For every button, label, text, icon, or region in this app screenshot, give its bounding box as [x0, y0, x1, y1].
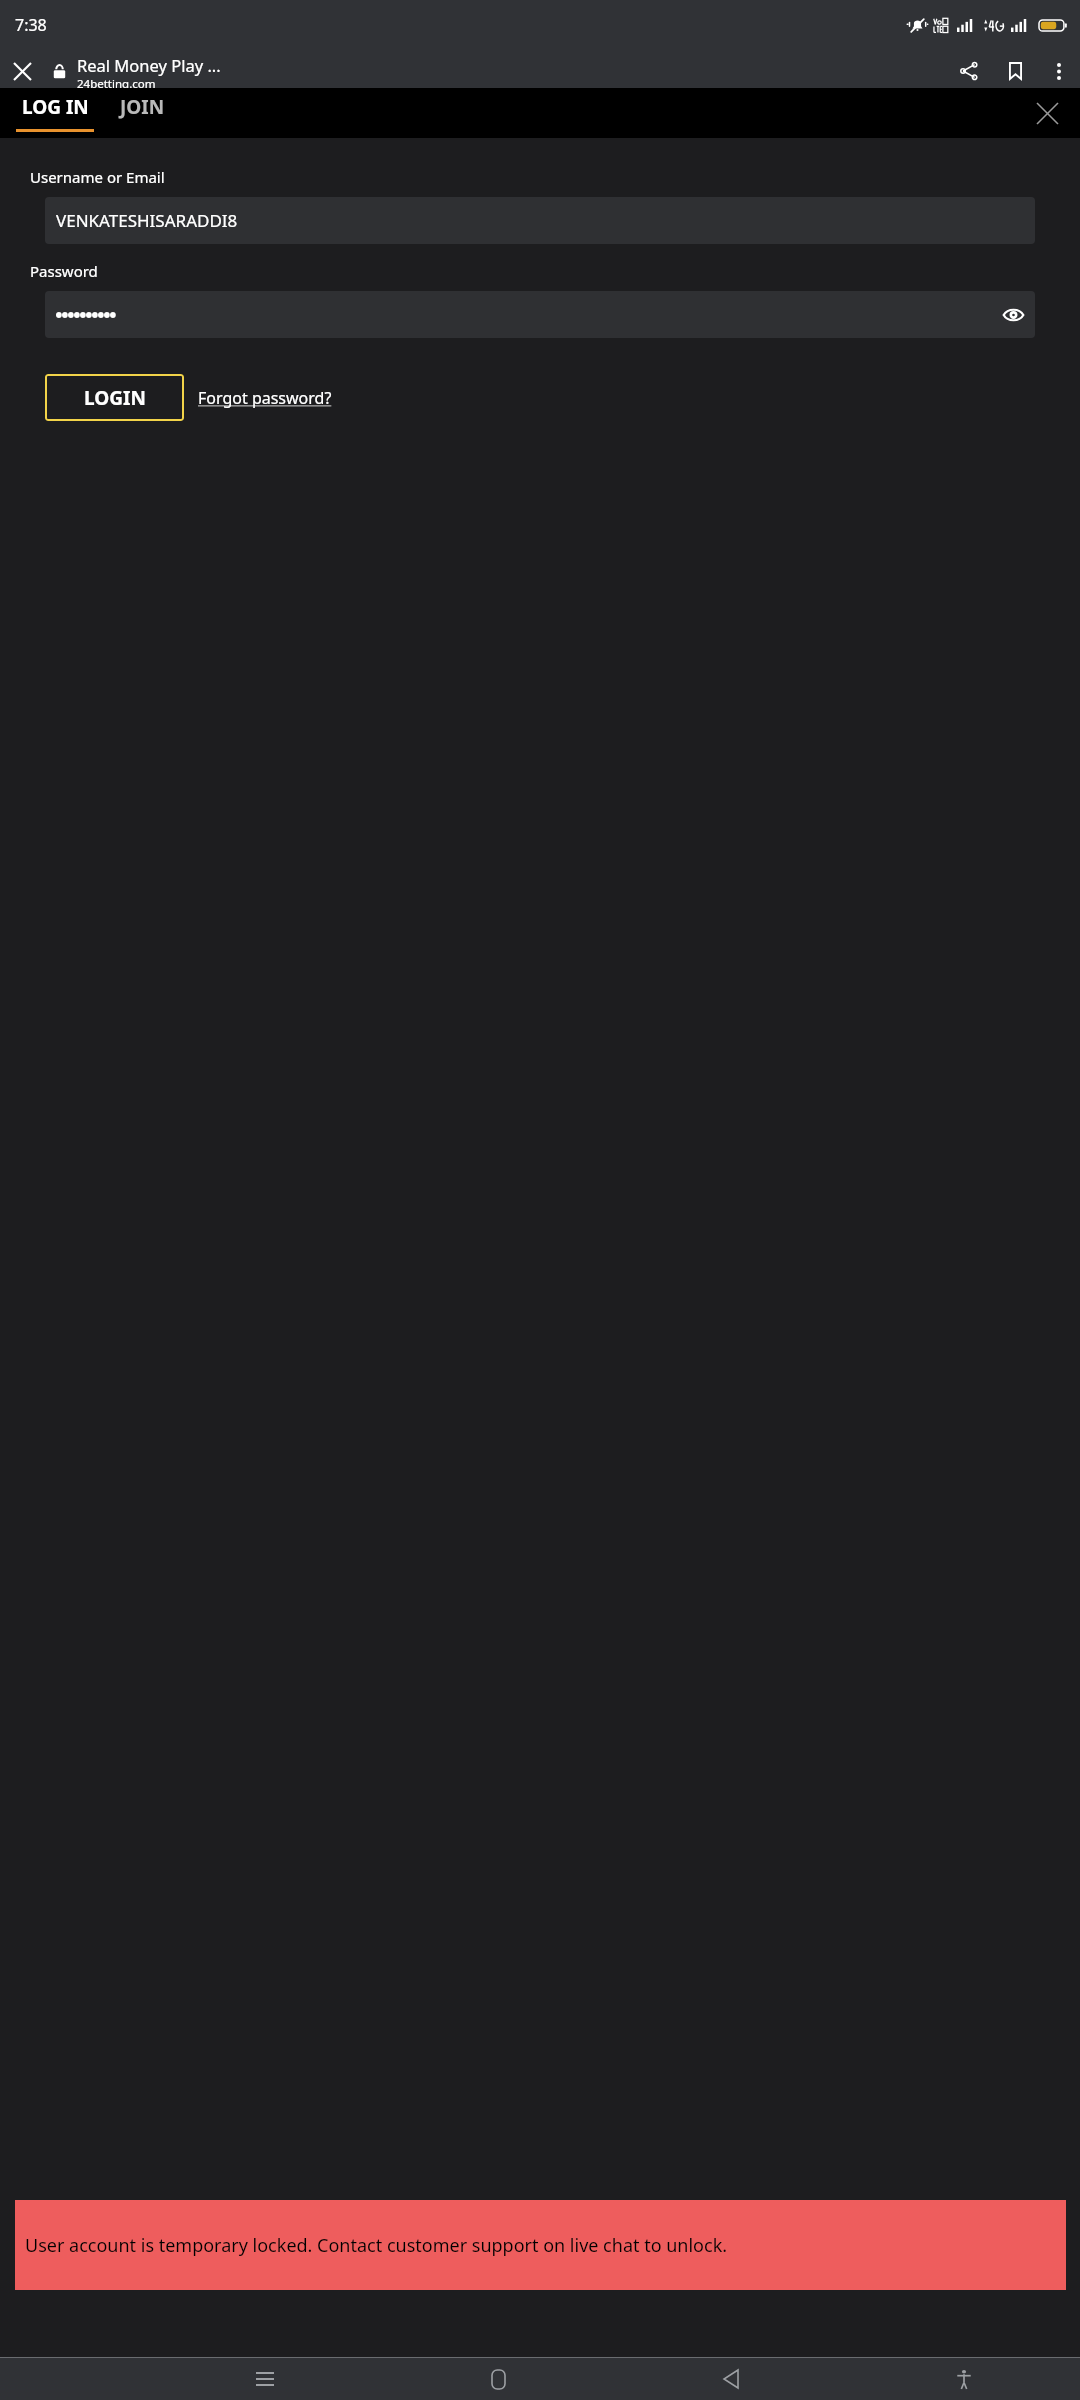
staticText: 7:38 — [15, 14, 47, 36]
staticText: Real Money Play ... — [77, 54, 221, 76]
button[interactable]: Close — [0, 54, 44, 88]
staticText: Password — [30, 261, 98, 281]
button[interactable]: Recent apps — [242, 2358, 288, 2400]
button[interactable]: Home — [475, 2358, 521, 2400]
button[interactable]: LOG IN — [16, 94, 94, 132]
button[interactable]: VENKATESHISARADDI8 — [45, 197, 1035, 244]
button[interactable]: Show password — [45, 291, 1035, 338]
staticText: 24betting.com — [77, 76, 156, 88]
staticText: User account is temporary locked. Contac… — [25, 2233, 728, 2258]
button[interactable]: Share — [946, 54, 992, 88]
button[interactable]: Accessibility — [941, 2358, 987, 2400]
button[interactable]: JOIN — [120, 94, 165, 120]
staticText: Forgot password? — [198, 387, 332, 409]
staticText: LOG IN — [22, 94, 89, 120]
staticText: LOGIN — [84, 385, 146, 411]
button[interactable]: LOGIN — [45, 374, 184, 421]
staticText: JOIN — [120, 94, 165, 120]
button[interactable]: Back — [708, 2358, 754, 2400]
button[interactable]: Bookmark — [992, 54, 1038, 88]
staticText: VENKATESHISARADDI8 — [56, 209, 238, 232]
staticText: Username or Email — [30, 167, 165, 187]
button[interactable]: Close login panel — [1028, 94, 1066, 132]
button[interactable]: Forgot password? — [198, 387, 332, 409]
button[interactable]: Show password — [991, 293, 1035, 337]
button[interactable]: More options — [1038, 54, 1080, 88]
